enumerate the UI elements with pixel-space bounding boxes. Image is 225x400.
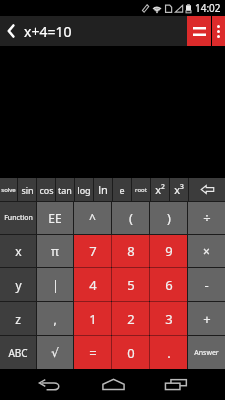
- button[interactable]: EE: [37, 202, 73, 234]
- button[interactable]: 6: [150, 268, 187, 301]
- button[interactable]: -: [188, 268, 225, 301]
- button[interactable]: Answer: [188, 336, 225, 369]
- button[interactable]: ln: [94, 178, 112, 201]
- button[interactable]: Home: [95, 369, 131, 400]
- staticText: solve: [1, 186, 16, 194]
- staticText: EE: [48, 210, 62, 226]
- button[interactable]: =: [74, 336, 111, 369]
- button[interactable]: π: [37, 235, 73, 267]
- staticText: 6: [165, 276, 173, 294]
- button[interactable]: 9: [150, 235, 187, 267]
- staticText: Answer: [194, 348, 219, 358]
- button[interactable]: sin: [18, 178, 36, 201]
- button[interactable]: 0: [112, 336, 149, 369]
- button[interactable]: ×: [188, 235, 225, 267]
- button[interactable]: Back: [0, 16, 22, 46]
- button[interactable]: z: [0, 302, 36, 335]
- staticText: z: [15, 311, 21, 327]
- button[interactable]: Backspace: [189, 178, 225, 201]
- staticText: ): [167, 209, 171, 227]
- staticText: +: [203, 310, 211, 328]
- button[interactable]: tan: [56, 178, 74, 201]
- staticText: .: [167, 344, 171, 362]
- staticText: 7: [89, 242, 97, 260]
- button[interactable]: 3: [150, 302, 187, 335]
- staticText: x+4=10: [24, 22, 72, 41]
- staticText: 4: [89, 276, 97, 294]
- staticText: 3: [165, 310, 173, 328]
- staticText: ÷: [203, 209, 211, 227]
- staticText: cos: [39, 184, 54, 196]
- staticText: log: [77, 184, 91, 196]
- button[interactable]: x: [0, 235, 36, 267]
- staticText: x³: [174, 182, 184, 197]
- button[interactable]: 1: [74, 302, 111, 335]
- staticText: -: [204, 276, 209, 294]
- staticText: 1: [89, 310, 97, 328]
- staticText: ABC: [8, 346, 28, 360]
- staticText: ln: [98, 182, 108, 197]
- staticText: ^: [89, 210, 96, 226]
- button[interactable]: 4: [74, 268, 111, 301]
- button[interactable]: y: [0, 268, 36, 301]
- staticText: sin: [21, 184, 34, 196]
- staticText: root: [135, 186, 147, 194]
- staticText: 8: [127, 242, 135, 260]
- button[interactable]: 5: [112, 268, 149, 301]
- button[interactable]: Equals: [187, 16, 211, 46]
- staticText: 0: [127, 344, 135, 362]
- staticText: Function: [4, 213, 33, 223]
- button[interactable]: √: [37, 336, 73, 369]
- staticText: 2: [127, 310, 135, 328]
- button[interactable]: .: [150, 336, 187, 369]
- button[interactable]: x³: [170, 178, 188, 201]
- staticText: =: [89, 344, 97, 362]
- staticText: 14:02: [195, 1, 221, 15]
- staticText: 9: [165, 242, 173, 260]
- staticText: e: [119, 184, 125, 196]
- button[interactable]: |: [37, 268, 73, 301]
- button[interactable]: ,: [37, 302, 73, 335]
- button[interactable]: Function: [0, 202, 36, 234]
- staticText: √: [51, 346, 59, 360]
- staticText: π: [51, 243, 59, 259]
- staticText: y: [15, 277, 22, 293]
- button[interactable]: 2: [112, 302, 149, 335]
- button[interactable]: e: [113, 178, 131, 201]
- button[interactable]: 7: [74, 235, 111, 267]
- button[interactable]: (: [112, 202, 149, 234]
- staticText: tan: [58, 184, 72, 196]
- staticText: x²: [155, 182, 165, 197]
- button[interactable]: Back: [31, 369, 67, 400]
- staticText: (: [129, 209, 133, 227]
- button[interactable]: log: [75, 178, 93, 201]
- button[interactable]: solve: [0, 178, 17, 201]
- staticText: 5: [127, 276, 135, 294]
- staticText: ×: [203, 243, 210, 259]
- button[interactable]: ÷: [188, 202, 225, 234]
- button[interactable]: Recent apps: [158, 369, 194, 400]
- button[interactable]: ): [150, 202, 187, 234]
- staticText: ,: [53, 311, 57, 327]
- button[interactable]: ABC: [0, 336, 36, 369]
- button[interactable]: More options: [212, 16, 225, 46]
- staticText: |: [52, 277, 59, 293]
- staticText: x: [15, 243, 22, 259]
- button[interactable]: ^: [74, 202, 111, 234]
- button[interactable]: 8: [112, 235, 149, 267]
- button[interactable]: x²: [151, 178, 169, 201]
- button[interactable]: root: [132, 178, 150, 201]
- button[interactable]: cos: [37, 178, 55, 201]
- button[interactable]: +: [188, 302, 225, 335]
